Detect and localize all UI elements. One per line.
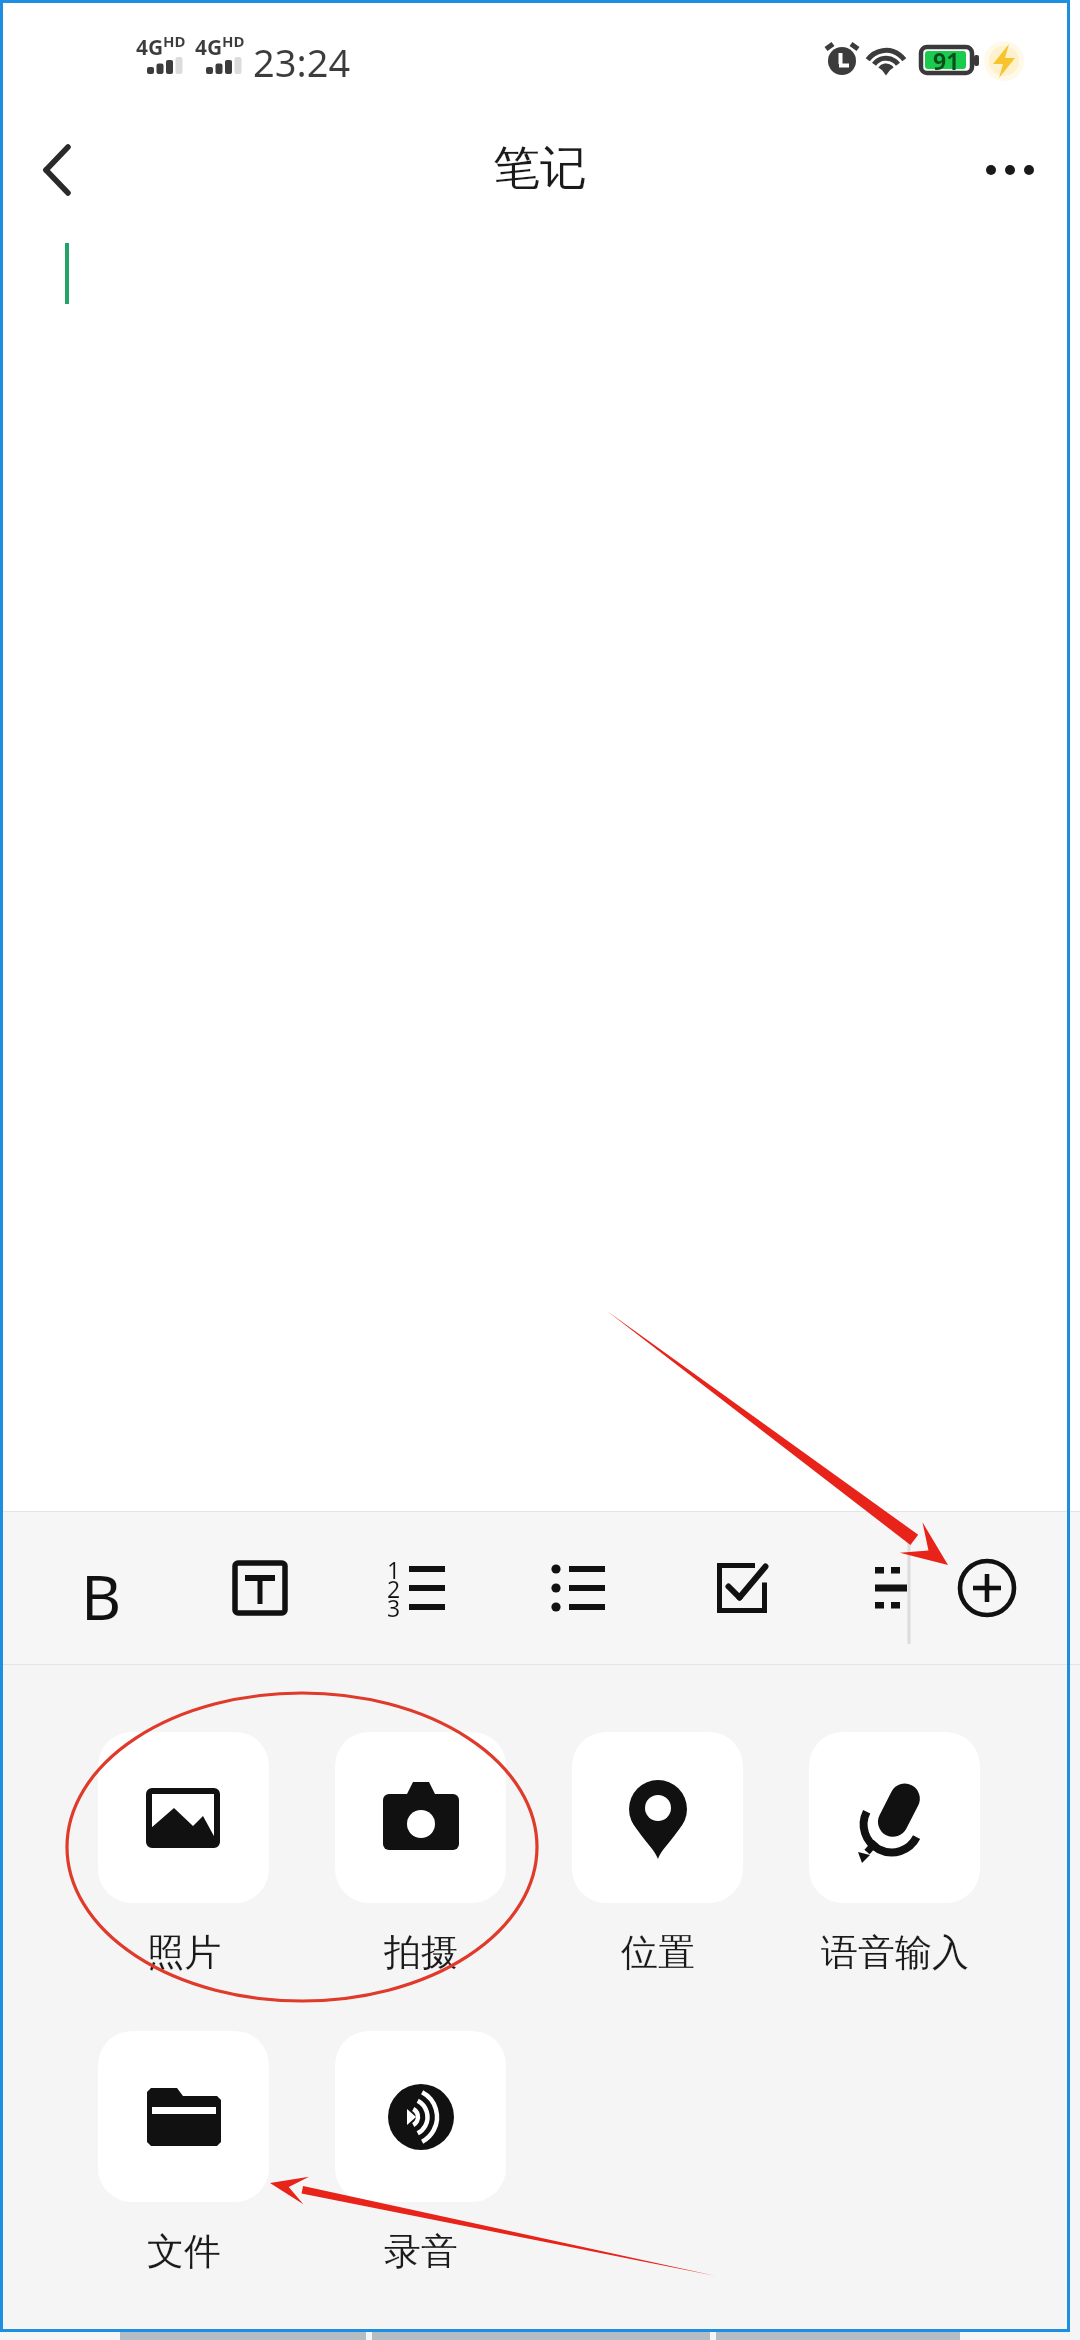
button[interactable]: Checklist [687,1533,797,1643]
staticText: 位置 [621,1929,695,1976]
staticText: 拍摄 [384,1929,458,1976]
button[interactable]: 录音 [335,2031,506,2202]
staticText: 笔记 [493,139,587,198]
staticText: HD [163,31,186,51]
button[interactable]: Bold [46,1533,156,1643]
button[interactable]: Back [6,122,102,218]
button[interactable]: Bulleted list [525,1533,635,1643]
staticText: 2 [387,1573,401,1604]
staticText: 1 [387,1554,401,1585]
staticText: 语音输入 [821,1929,969,1976]
button[interactable]: Divider [836,1533,946,1643]
staticText: 23:24 [253,36,351,88]
staticText: B [81,1554,122,1638]
staticText: 91 [933,45,960,76]
button[interactable]: Numbered list [365,1533,475,1643]
staticText: 文件 [147,2228,221,2275]
staticText: 录音 [384,2228,458,2275]
staticText: 照片 [147,1929,221,1976]
button[interactable]: 文件 [98,2031,269,2202]
staticText: 4G [136,33,164,62]
button[interactable]: Note body [0,230,1080,1511]
button[interactable]: Text style [205,1533,315,1643]
staticText: 4G [195,33,223,62]
button[interactable]: 语音输入 [809,1732,980,1903]
button[interactable]: 照片 [98,1732,269,1903]
button[interactable]: More options [962,122,1058,218]
button[interactable]: 位置 [572,1732,743,1903]
button[interactable]: 拍摄 [335,1732,506,1903]
button[interactable]: Add attachment [932,1533,1042,1643]
staticText: HD [222,31,245,51]
staticText: 3 [387,1592,401,1623]
